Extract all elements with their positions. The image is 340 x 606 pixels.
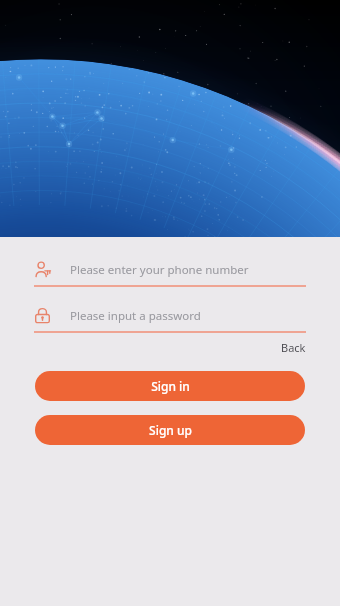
button[interactable]: Phone number [34, 257, 306, 287]
staticText: Please enter your phone number [70, 262, 249, 278]
staticText: Sign in [151, 378, 190, 394]
staticText: Sign up [149, 422, 192, 438]
button[interactable]: Sign in [35, 371, 305, 401]
staticText: Please input a password [70, 308, 201, 324]
staticText: Back [281, 340, 306, 355]
button[interactable]: Password [34, 303, 306, 333]
button[interactable]: Sign up [35, 415, 305, 445]
button[interactable]: Back [277, 338, 310, 357]
